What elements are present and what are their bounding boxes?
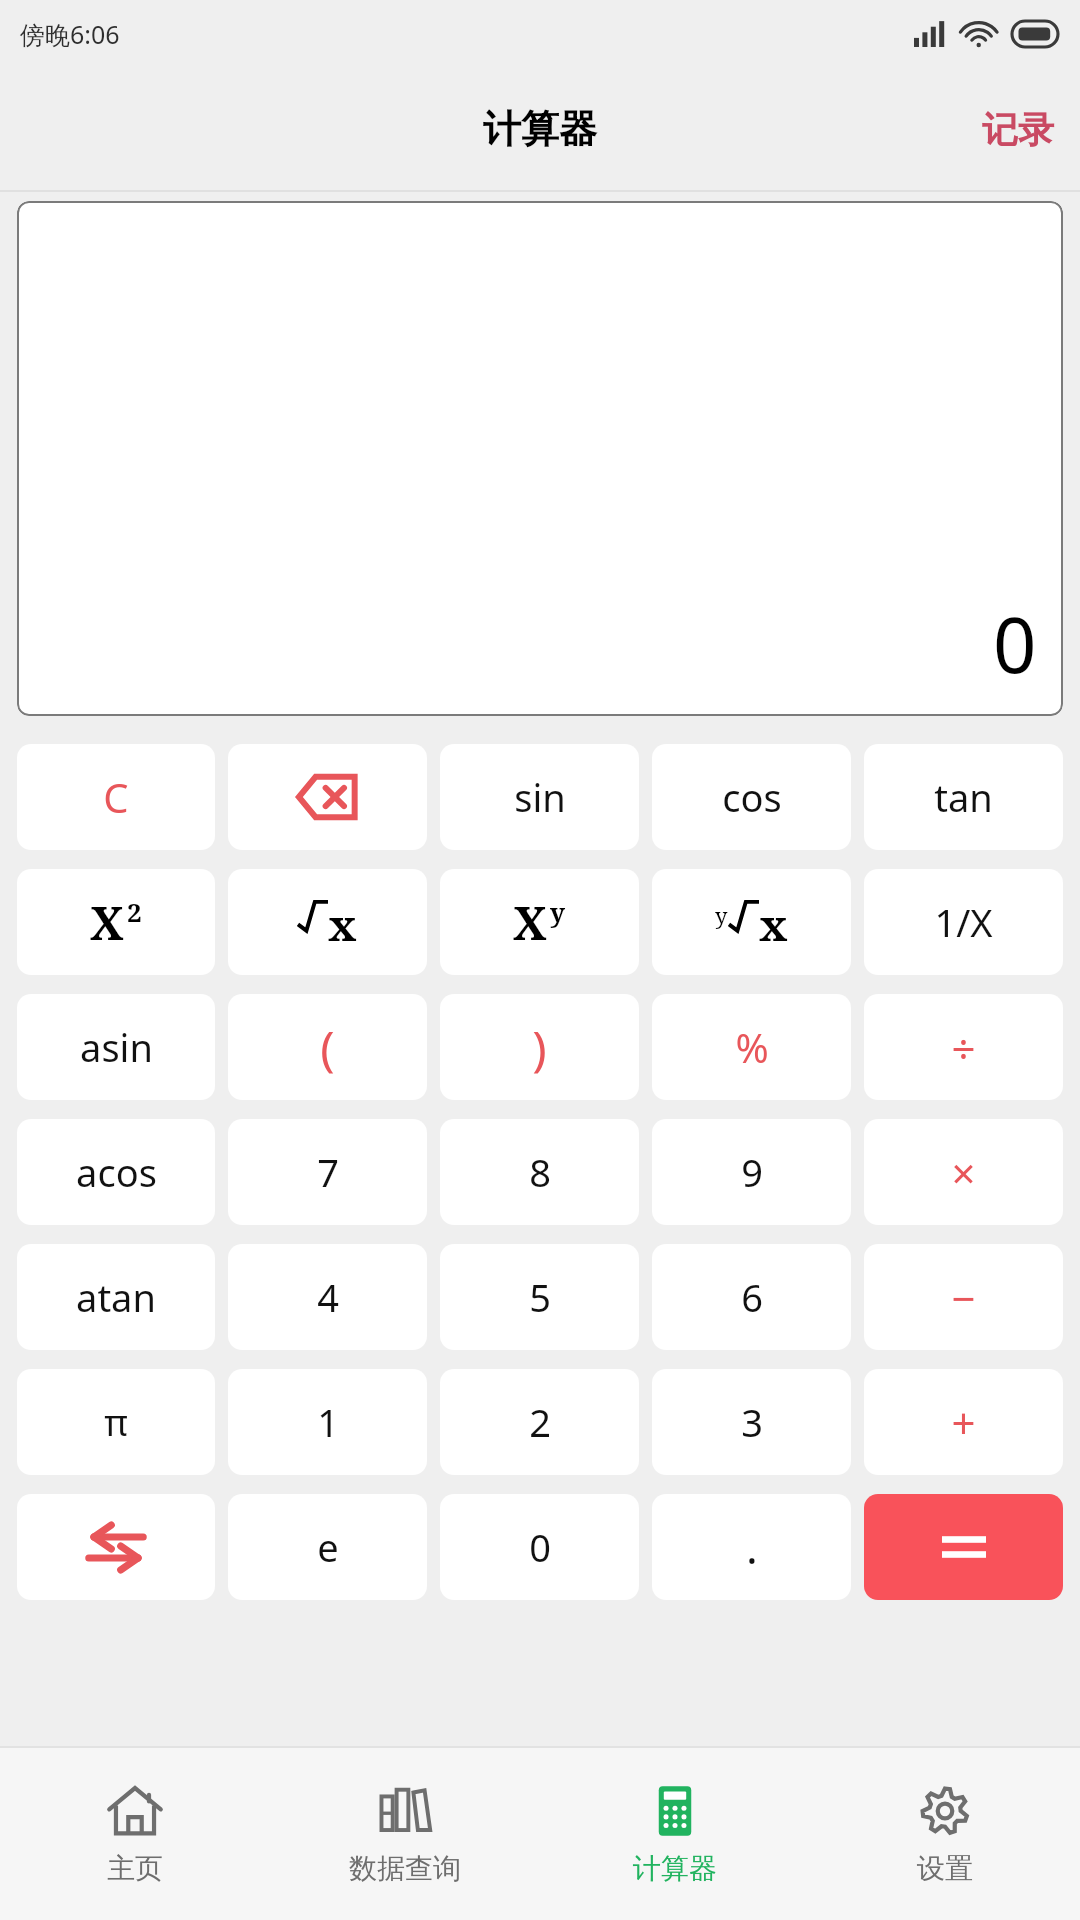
staticText: X	[90, 891, 124, 954]
staticText: 4	[317, 1271, 339, 1323]
button[interactable]: cos	[652, 744, 851, 850]
button[interactable]: ÷	[864, 994, 1063, 1100]
staticText: 计算器	[633, 1851, 717, 1886]
staticText: atan	[76, 1271, 156, 1323]
button[interactable]: X squared	[17, 869, 215, 975]
staticText: ÷	[951, 1019, 976, 1076]
button[interactable]: Backspace	[228, 744, 427, 850]
staticText: %	[735, 1020, 769, 1074]
button[interactable]: 6	[652, 1244, 851, 1350]
staticText: )	[532, 1015, 547, 1080]
button[interactable]: X to the power of Y	[440, 869, 639, 975]
staticText: 傍晚6:06	[20, 17, 120, 51]
button[interactable]: %	[652, 994, 851, 1100]
staticText: 2	[127, 894, 142, 929]
button[interactable]: ×	[864, 1119, 1063, 1225]
button[interactable]: 8	[440, 1119, 639, 1225]
staticText: 7	[317, 1146, 339, 1198]
button[interactable]: 主页	[0, 1748, 270, 1920]
staticText: 8	[529, 1146, 551, 1198]
staticText: (	[320, 1015, 335, 1080]
button[interactable]: atan	[17, 1244, 215, 1350]
staticText: 5	[529, 1271, 551, 1323]
button[interactable]: 设置	[810, 1748, 1080, 1920]
staticText: 6	[741, 1271, 763, 1323]
button[interactable]: .	[652, 1494, 851, 1600]
button[interactable]: Y-th root of X	[652, 869, 851, 975]
button[interactable]: C	[17, 744, 215, 850]
button[interactable]: 2	[440, 1369, 639, 1475]
staticText: 1/X	[934, 896, 993, 948]
staticText: e	[317, 1521, 339, 1573]
staticText: +	[951, 1394, 976, 1451]
staticText: 主页	[107, 1851, 163, 1886]
staticText: cos	[722, 771, 782, 823]
button[interactable]: 记录	[956, 89, 1080, 170]
staticText: 0	[993, 592, 1037, 696]
staticText: 设置	[917, 1851, 973, 1886]
button[interactable]: 3	[652, 1369, 851, 1475]
staticText: −	[951, 1269, 976, 1326]
staticText: X	[513, 891, 547, 954]
button[interactable]: 数据查询	[270, 1748, 540, 1920]
button[interactable]: asin	[17, 994, 215, 1100]
button[interactable]: π	[17, 1369, 215, 1475]
staticText: ×	[951, 1144, 976, 1201]
button[interactable]: 0	[440, 1494, 639, 1600]
button[interactable]: Square root of X	[228, 869, 427, 975]
button[interactable]: )	[440, 994, 639, 1100]
button[interactable]: (	[228, 994, 427, 1100]
staticText: tan	[934, 771, 993, 823]
staticText: 数据查询	[349, 1851, 461, 1886]
button[interactable]: +	[864, 1369, 1063, 1475]
button[interactable]: acos	[17, 1119, 215, 1225]
button[interactable]: 1/X	[864, 869, 1063, 975]
button[interactable]: −	[864, 1244, 1063, 1350]
staticText: 3	[741, 1396, 763, 1448]
button[interactable]: Equals	[864, 1494, 1063, 1600]
staticText: 9	[741, 1146, 763, 1198]
staticText: acos	[76, 1146, 157, 1198]
button[interactable]: e	[228, 1494, 427, 1600]
staticText: x	[328, 894, 357, 954]
button[interactable]: 7	[228, 1119, 427, 1225]
button[interactable]: Swap	[17, 1494, 215, 1600]
button[interactable]: 计算器	[540, 1748, 810, 1920]
staticText: sin	[514, 771, 566, 823]
button[interactable]: 9	[652, 1119, 851, 1225]
staticText: x	[759, 894, 788, 954]
staticText: 2	[529, 1396, 551, 1448]
staticText: π	[104, 1398, 128, 1447]
staticText: 计算器	[483, 105, 597, 153]
button[interactable]: tan	[864, 744, 1063, 850]
staticText: 记录	[982, 107, 1054, 152]
staticText: C	[103, 770, 129, 824]
staticText: y	[550, 894, 566, 929]
button[interactable]: 5	[440, 1244, 639, 1350]
staticText: 0	[529, 1521, 551, 1573]
staticText: 1	[317, 1396, 339, 1448]
staticText: asin	[80, 1021, 153, 1073]
button[interactable]: sin	[440, 744, 639, 850]
staticText: .	[746, 1517, 758, 1577]
staticText: y	[715, 900, 728, 930]
button[interactable]: 4	[228, 1244, 427, 1350]
button[interactable]: 1	[228, 1369, 427, 1475]
